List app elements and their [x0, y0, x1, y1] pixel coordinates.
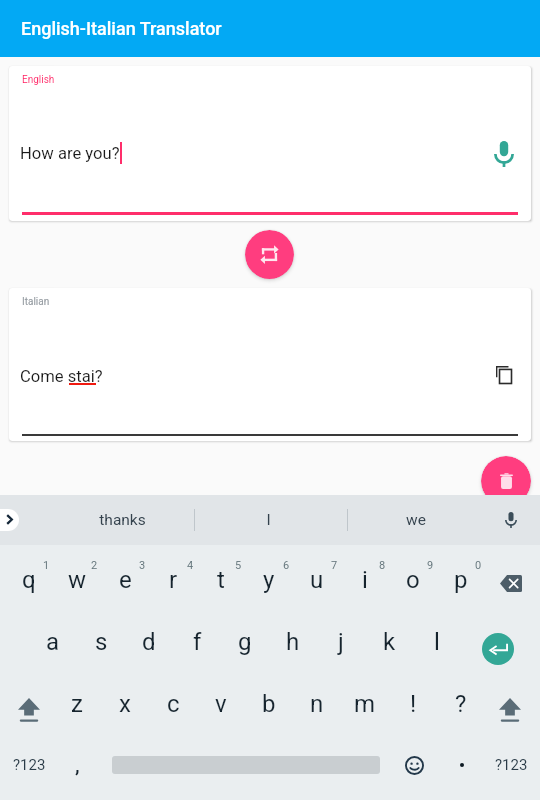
staticText: h	[286, 628, 300, 656]
staticText: z	[71, 690, 83, 718]
button[interactable]: v	[197, 677, 245, 737]
staticText: 5	[235, 559, 242, 572]
button[interactable]: b	[245, 677, 293, 737]
button[interactable]: Voice typing	[492, 505, 529, 535]
button[interactable]: I	[208, 495, 328, 545]
staticText: j	[338, 628, 344, 656]
button[interactable]: ?123	[482, 735, 540, 795]
button[interactable]: Shift	[5, 680, 53, 740]
button[interactable]: 5	[197, 553, 245, 613]
button[interactable]: g	[221, 615, 269, 675]
button[interactable]: ?123	[0, 735, 58, 795]
staticText: t	[217, 566, 225, 594]
staticText: 6	[283, 559, 290, 572]
button[interactable]: 3	[101, 553, 149, 613]
staticText: g	[238, 628, 252, 656]
staticText: q	[22, 566, 36, 594]
staticText: x	[119, 690, 131, 718]
staticText: u	[310, 566, 324, 594]
staticText: 9	[427, 559, 434, 572]
staticText: m	[354, 690, 376, 718]
staticText: 4	[187, 559, 194, 572]
staticText: d	[142, 628, 156, 656]
button[interactable]: 4	[149, 553, 197, 613]
staticText: ?123	[495, 756, 528, 774]
staticText: 8	[379, 559, 386, 572]
button[interactable]: k	[365, 615, 413, 675]
button[interactable]: 9	[389, 553, 437, 613]
staticText: 3	[139, 559, 146, 572]
staticText: 2	[91, 559, 98, 572]
button[interactable]: !	[389, 677, 437, 737]
staticText: we	[406, 511, 426, 529]
staticText: ?	[455, 690, 467, 718]
staticText: n	[310, 690, 324, 718]
staticText: i	[362, 566, 368, 594]
button[interactable]: 6	[245, 553, 293, 613]
staticText: 1	[43, 559, 50, 572]
button[interactable]: we	[356, 495, 476, 545]
button[interactable]: z	[53, 677, 101, 737]
button[interactable]: ?	[437, 677, 485, 737]
button[interactable]: 1	[5, 553, 53, 613]
staticText: English	[22, 74, 55, 86]
button[interactable]: j	[317, 615, 365, 675]
button[interactable]: d	[125, 615, 173, 675]
staticText: thanks	[99, 511, 146, 529]
staticText: f	[193, 628, 202, 656]
button[interactable]: Enter	[474, 625, 522, 673]
staticText: e	[119, 566, 132, 594]
button[interactable]: Swap languages	[245, 230, 294, 279]
staticText: !	[410, 690, 417, 718]
staticText: w	[68, 566, 87, 594]
staticText: English-Italian Translator	[21, 18, 222, 39]
button[interactable]: Shift	[486, 680, 534, 740]
button[interactable]: l	[413, 615, 461, 675]
button[interactable]: Voice input	[480, 130, 528, 178]
button[interactable]: Comma	[57, 735, 97, 795]
button[interactable]: 0	[437, 553, 485, 613]
staticText: v	[215, 690, 227, 718]
staticText: Italian	[22, 296, 50, 308]
button[interactable]: 2	[53, 553, 101, 613]
staticText: l	[434, 628, 440, 656]
button[interactable]: m	[341, 677, 389, 737]
staticText: Come stai?	[20, 367, 103, 386]
staticText: How are you?	[20, 144, 120, 163]
button[interactable]: Clear text	[481, 456, 531, 506]
staticText: 0	[475, 559, 482, 572]
button[interactable]: n	[293, 677, 341, 737]
button[interactable]: Expand toolbar	[0, 509, 19, 531]
staticText: I	[266, 511, 271, 529]
button[interactable]: h	[269, 615, 317, 675]
button[interactable]: f	[173, 615, 221, 675]
staticText: ,	[75, 754, 80, 776]
staticText: y	[263, 566, 275, 594]
staticText: r	[169, 566, 178, 594]
button[interactable]: thanks	[62, 495, 182, 545]
button[interactable]: 8	[341, 553, 389, 613]
staticText: a	[46, 628, 60, 656]
staticText: 7	[331, 559, 338, 572]
staticText: ?123	[13, 756, 46, 774]
button[interactable]: Period	[445, 735, 479, 795]
button[interactable]: Backspace	[487, 553, 535, 613]
staticText: p	[454, 566, 468, 594]
button[interactable]: a	[29, 615, 77, 675]
staticText: s	[95, 628, 108, 656]
button[interactable]: s	[77, 615, 125, 675]
staticText: o	[406, 566, 420, 594]
staticText: k	[383, 628, 396, 656]
staticText: c	[167, 690, 180, 718]
button[interactable]: Emoji	[394, 735, 434, 795]
staticText: b	[262, 690, 276, 718]
button[interactable]: Copy translation	[482, 353, 526, 397]
button[interactable]: x	[101, 677, 149, 737]
button[interactable]: c	[149, 677, 197, 737]
button[interactable]: 7	[293, 553, 341, 613]
